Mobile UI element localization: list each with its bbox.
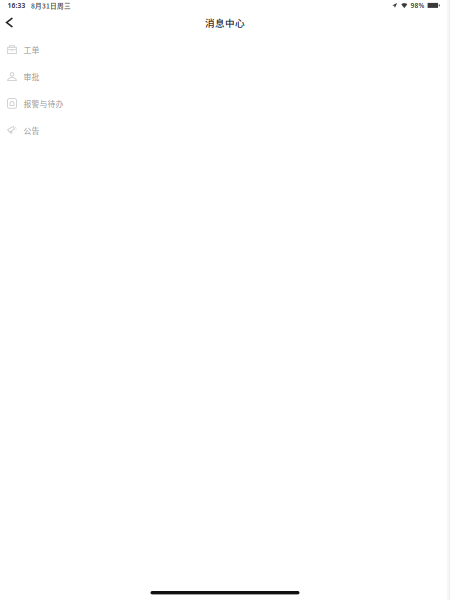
staticText: 报警与待办	[23, 98, 63, 109]
staticText: 98%	[411, 1, 425, 10]
button[interactable]: 报警与待办	[0, 90, 450, 117]
staticText: 8月31日周三	[31, 1, 71, 10]
button[interactable]: 审批	[0, 63, 450, 90]
staticText: 消息中心	[205, 15, 245, 29]
button[interactable]: 返回	[0, 12, 22, 33]
staticText: 工单	[23, 44, 39, 55]
button[interactable]: 公告	[0, 117, 450, 144]
staticText: 16:33	[7, 1, 25, 10]
staticText: 审批	[23, 71, 39, 82]
button[interactable]: 工单	[0, 36, 450, 63]
staticText: 公告	[23, 125, 39, 136]
